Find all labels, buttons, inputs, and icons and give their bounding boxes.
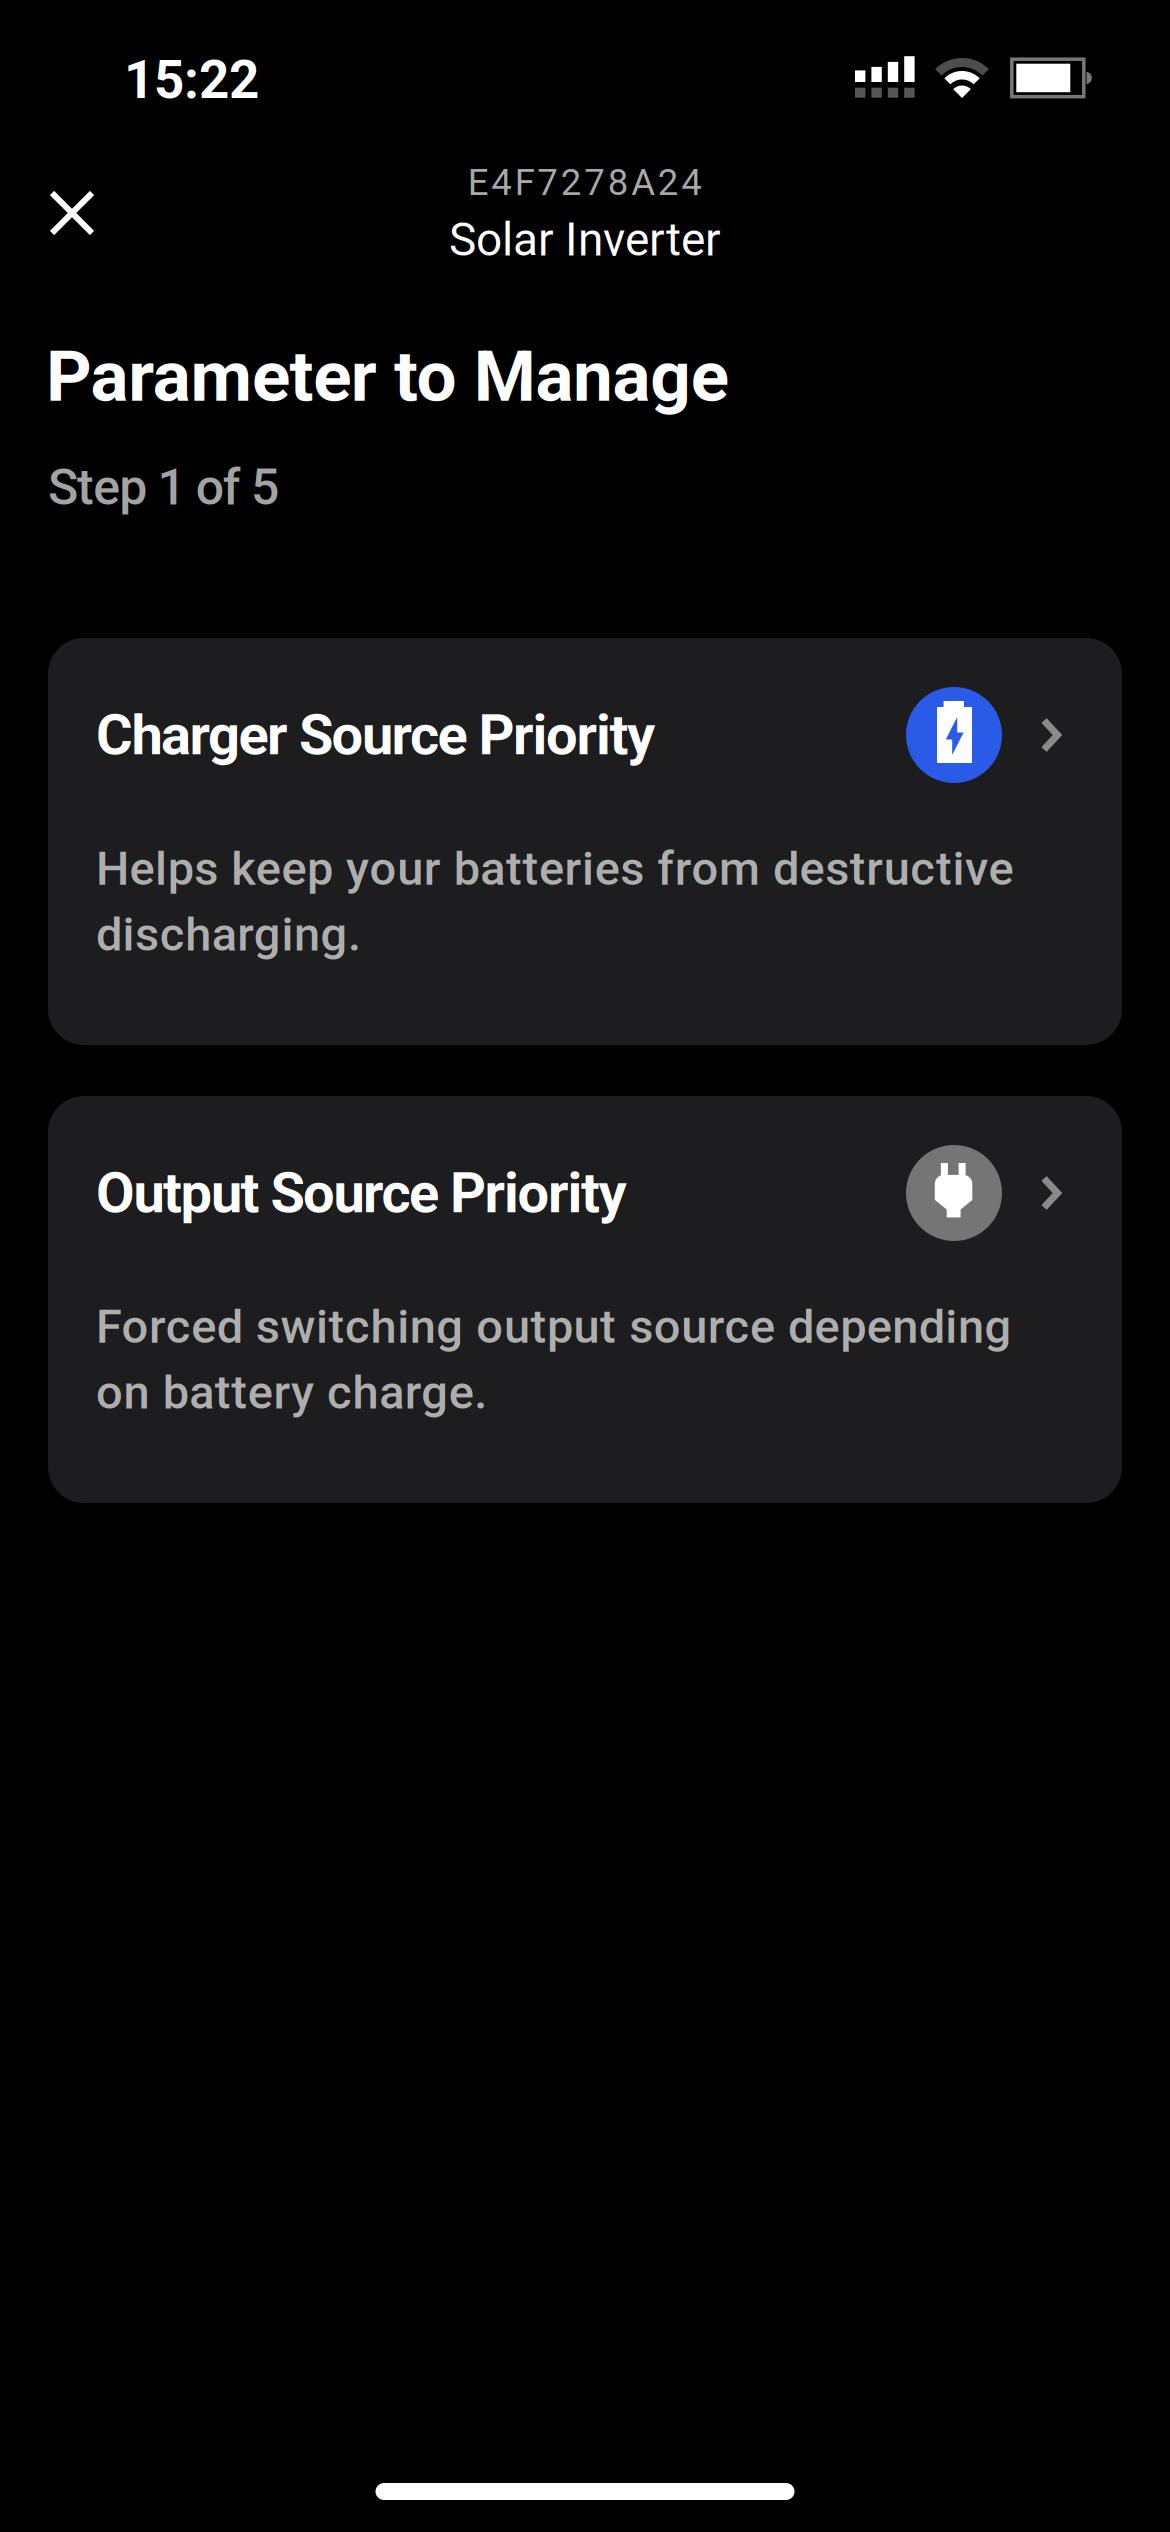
staticText: Helps keep your batteries from destructi…: [96, 836, 1013, 967]
staticText: Step 1 of 5: [48, 458, 279, 517]
staticText: Parameter to Manage: [46, 335, 729, 418]
button[interactable]: Charger Source Priority: [48, 638, 1122, 1045]
staticText: Solar Inverter: [449, 213, 721, 267]
staticText: E4F7278A24: [468, 161, 702, 204]
staticText: 15:22: [124, 49, 259, 111]
staticText: Charger Source Priority: [96, 702, 655, 768]
staticText: Output Source Priority: [96, 1160, 626, 1226]
button[interactable]: Output Source Priority: [48, 1096, 1122, 1503]
button[interactable]: Close: [38, 179, 106, 247]
staticText: Forced switching output source depending…: [96, 1294, 1011, 1425]
